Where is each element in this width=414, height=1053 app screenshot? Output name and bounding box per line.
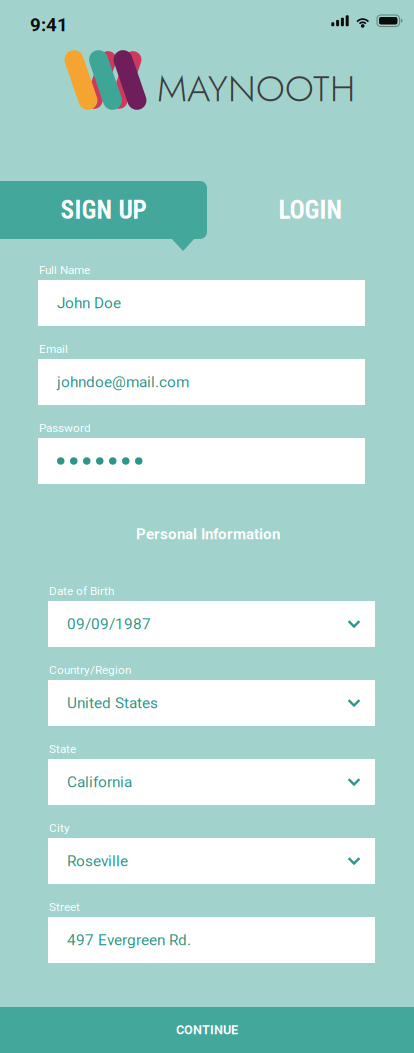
button[interactable]: LOGIN — [207, 181, 414, 239]
staticText: johndoe@mail.com — [57, 373, 189, 391]
staticText: 9:41 — [30, 14, 68, 36]
staticText: 497 Evergreen Rd. — [67, 931, 191, 949]
staticText: LOGIN — [278, 195, 342, 225]
staticText: Email — [39, 342, 68, 356]
button[interactable]: United States — [48, 680, 375, 726]
button[interactable]: 497 Evergreen Rd. — [48, 917, 375, 963]
button[interactable]: California — [48, 759, 375, 805]
staticText: City — [49, 821, 70, 835]
staticText: California — [67, 773, 132, 791]
button[interactable] — [38, 438, 365, 484]
button[interactable]: 09/09/1987 — [48, 601, 375, 647]
staticText: SIGN UP — [60, 195, 146, 225]
button[interactable]: Roseville — [48, 838, 375, 884]
button[interactable]: SIGN UP — [0, 181, 207, 239]
button[interactable]: John Doe — [38, 280, 365, 326]
staticText: Full Name — [39, 263, 90, 277]
button[interactable]: CONTINUE — [0, 1007, 414, 1053]
staticText: CONTINUE — [176, 1023, 238, 1037]
staticText: 09/09/1987 — [67, 615, 151, 633]
staticText: State — [49, 742, 76, 756]
button[interactable]: johndoe@mail.com — [38, 359, 365, 405]
staticText: Roseville — [67, 852, 128, 870]
staticText: Personal Information — [136, 525, 280, 543]
staticText: MAYNOOTH — [157, 62, 355, 115]
staticText: Date of Birth — [49, 584, 114, 598]
staticText: Street — [49, 900, 80, 914]
staticText: Country/Region — [49, 663, 131, 677]
staticText: United States — [67, 694, 158, 712]
staticText: John Doe — [57, 294, 121, 312]
staticText: Password — [39, 421, 91, 435]
